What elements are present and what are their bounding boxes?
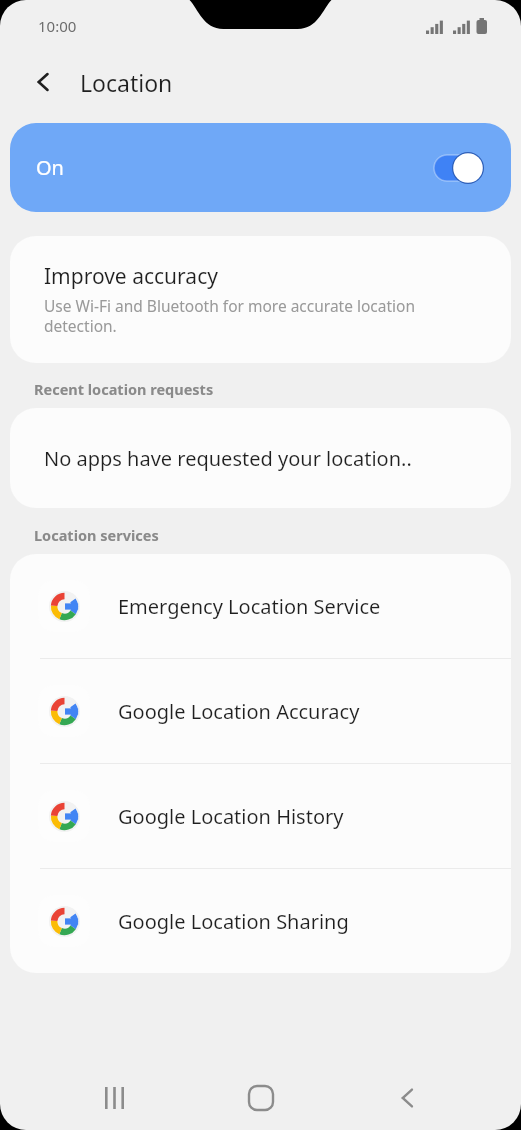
- button[interactable]: Google Location History: [10, 764, 511, 868]
- staticText: Recent location requests: [34, 379, 214, 399]
- staticText: On: [36, 154, 64, 181]
- staticText: Google Location Sharing: [118, 908, 349, 935]
- staticText: Location services: [34, 525, 159, 545]
- staticText: 10:00: [38, 16, 77, 36]
- staticText: Use Wi-Fi and Bluetooth for more accurat…: [44, 295, 485, 337]
- button[interactable]: Recent apps: [88, 1070, 144, 1126]
- button[interactable]: Back: [380, 1070, 436, 1126]
- button[interactable]: Google Location Sharing: [10, 869, 511, 973]
- button[interactable]: On: [10, 123, 511, 212]
- button[interactable]: Improve accuracy: [10, 236, 511, 363]
- staticText: Location: [80, 67, 173, 98]
- button[interactable]: Back: [22, 60, 66, 104]
- staticText: Emergency Location Service: [118, 593, 381, 620]
- button[interactable]: Google Location Accuracy: [10, 659, 511, 763]
- button[interactable]: Home: [233, 1070, 289, 1126]
- staticText: No apps have requested your location..: [44, 445, 412, 472]
- staticText: Google Location History: [118, 803, 344, 830]
- staticText: Google Location Accuracy: [118, 698, 360, 725]
- button[interactable]: Emergency Location Service: [10, 554, 511, 658]
- staticText: Improve accuracy: [44, 262, 218, 291]
- button[interactable]: No apps have requested your location..: [10, 408, 511, 508]
